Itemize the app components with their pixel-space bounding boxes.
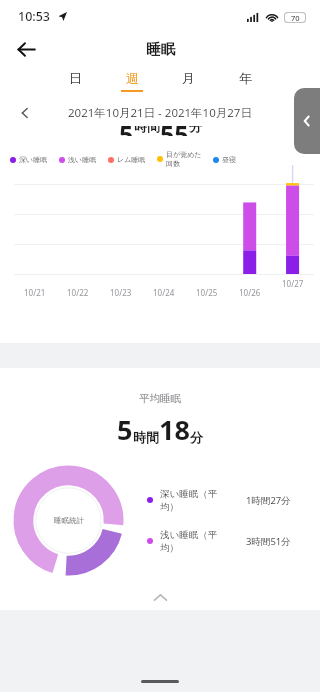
- staticText: 10/26: [239, 287, 261, 298]
- staticText: 月: [182, 70, 195, 86]
- staticText: 浅い睡眠（平均）: [160, 529, 236, 553]
- button[interactable]: 週: [119, 70, 145, 92]
- staticText: レム睡眠: [117, 155, 146, 164]
- button[interactable]: Open panel: [294, 88, 320, 154]
- staticText: 時間: [133, 429, 159, 445]
- staticText: 週: [126, 70, 139, 86]
- button[interactable]: Back: [8, 34, 44, 64]
- staticText: 18: [159, 411, 190, 448]
- staticText: 目が覚めた: [166, 150, 202, 159]
- staticText: 深い睡眠（平均）: [160, 488, 236, 512]
- staticText: 70: [291, 13, 300, 23]
- staticText: 1時間27分: [246, 494, 291, 507]
- button[interactable]: Collapse: [0, 588, 320, 606]
- button[interactable]: 年: [232, 70, 258, 92]
- staticText: 55: [160, 126, 189, 136]
- button[interactable]: 月: [175, 70, 201, 92]
- staticText: 3時間51分: [246, 535, 291, 548]
- staticText: 年: [239, 70, 252, 86]
- staticText: 分: [190, 429, 203, 445]
- staticText: 10/22: [67, 287, 89, 298]
- staticText: 浅い睡眠: [68, 155, 97, 164]
- staticText: 回数: [166, 159, 180, 168]
- staticText: 2021年10月21日 - 2021年10月27日: [68, 105, 252, 121]
- staticText: 日: [69, 70, 82, 86]
- staticText: 睡眠統計: [54, 516, 84, 525]
- staticText: 分: [189, 126, 202, 134]
- staticText: 10/23: [110, 287, 132, 298]
- button[interactable]: 日: [62, 70, 88, 92]
- staticText: 10:53: [18, 8, 51, 25]
- staticText: 昼寝: [222, 155, 236, 164]
- button[interactable]: Previous week: [14, 102, 36, 124]
- staticText: 平均睡眠: [0, 392, 320, 405]
- staticText: 時間: [134, 126, 160, 134]
- staticText: 10/21: [24, 287, 46, 298]
- staticText: 深い睡眠: [19, 155, 48, 164]
- staticText: 5: [119, 126, 134, 136]
- staticText: 5: [117, 411, 133, 448]
- staticText: 10/24: [153, 287, 175, 298]
- staticText: 10/25: [196, 287, 218, 298]
- staticText: 睡眠: [146, 40, 175, 58]
- staticText: 10/27: [282, 278, 304, 289]
